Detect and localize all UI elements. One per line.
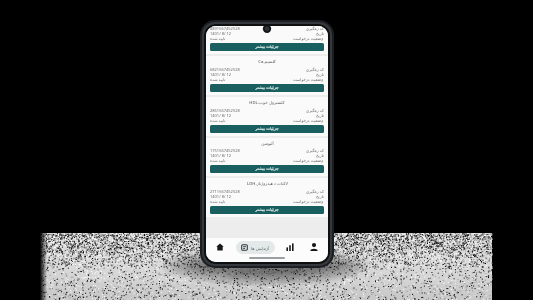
staticText: وضعیت درخواست (293, 77, 324, 82)
button[interactable]: خانه (212, 239, 228, 255)
button[interactable]: جزئیات بیشتر (210, 206, 324, 214)
staticText: تایید شده (210, 158, 226, 163)
staticText: آلبومین (261, 141, 274, 146)
button[interactable]: LDH-لاکتات د هیدروژناز (206, 178, 328, 217)
staticText: 1751667452528 (210, 148, 240, 153)
staticText: وضعیت درخواست (293, 118, 324, 123)
staticText: 1401/ 8/ 12 (210, 113, 232, 118)
staticText: وضعیت درخواست (293, 36, 324, 41)
button[interactable]: جزئیات بیشتر (210, 125, 324, 133)
button[interactable]: Ca-کلسیم (206, 56, 328, 95)
staticText: کد رهگیری (306, 108, 324, 113)
staticText: کد رهگیری (306, 67, 324, 72)
staticText: جزئیات بیشتر (255, 44, 279, 50)
button[interactable]: آزمایش ها (236, 241, 275, 254)
staticText: HDL-کلسترول خوب (249, 100, 285, 106)
staticText: 2711667452528 (210, 189, 240, 194)
staticText: آزمایش ها (251, 245, 270, 251)
staticText: 4891667452528 (210, 26, 240, 31)
button[interactable]: جزئیات بیشتر (210, 43, 324, 51)
staticText: کد رهگیری (306, 189, 324, 194)
staticText: تایید شده (210, 77, 226, 82)
button[interactable]: 4891667452528 (206, 26, 328, 54)
staticText: تاریخ (316, 194, 324, 199)
staticText: 6821667452528 (210, 67, 240, 72)
staticText: 2861667452528 (210, 108, 240, 113)
button[interactable]: آلبومین (206, 138, 328, 176)
staticText: جزئیات بیشتر (255, 207, 279, 213)
staticText: تاریخ (316, 31, 324, 36)
staticText: وضعیت درخواست (293, 158, 324, 163)
staticText: تایید شده (210, 199, 226, 204)
button[interactable]: جزئیات بیشتر (210, 165, 324, 173)
button[interactable]: جزئیات بیشتر (210, 84, 324, 92)
staticText: تایید شده (210, 118, 226, 123)
staticText: تاریخ (316, 113, 324, 118)
button[interactable]: HDL-کلسترول خوب (206, 97, 328, 136)
staticText: 1401/ 8/ 12 (210, 31, 232, 36)
staticText: جزئیات بیشتر (255, 85, 279, 91)
staticText: جزئیات بیشتر (255, 166, 279, 172)
staticText: 1401/ 8/ 12 (210, 194, 232, 199)
staticText: تاریخ (316, 153, 324, 158)
button[interactable]: نمودار (282, 239, 298, 255)
staticText: کد رهگیری (306, 148, 324, 153)
staticText: تاریخ (316, 72, 324, 77)
staticText: 1401/ 8/ 12 (210, 72, 232, 77)
button[interactable]: پروفایل (306, 239, 322, 255)
staticText: LDH-لاکتات د هیدروژناز (247, 181, 288, 187)
staticText: وضعیت درخواست (293, 199, 324, 204)
staticText: 1401/ 8/ 12 (210, 153, 232, 158)
staticText: کد رهگیری (306, 26, 324, 31)
staticText: Ca-کلسیم (258, 59, 276, 65)
staticText: جزئیات بیشتر (255, 126, 279, 132)
staticText: تایید شده (210, 36, 226, 41)
